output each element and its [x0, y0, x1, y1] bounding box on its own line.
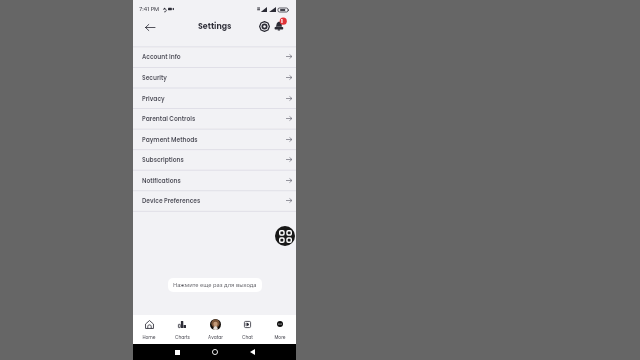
staticText: Privacy: [142, 95, 165, 103]
button[interactable]: Back: [246, 346, 258, 358]
button[interactable]: Parental Controls: [133, 108, 296, 129]
button[interactable]: Security: [133, 67, 296, 88]
staticText: Subscriptions: [142, 156, 184, 164]
button[interactable]: [166, 315, 199, 344]
staticText: Chat: [242, 334, 253, 340]
button[interactable]: Notifications: [133, 170, 296, 191]
button[interactable]: [263, 315, 296, 344]
staticText: Parental Controls: [142, 115, 196, 123]
staticText: Security: [142, 74, 167, 82]
button[interactable]: Settings: [258, 20, 270, 32]
button[interactable]: Home: [209, 346, 221, 358]
button[interactable]: Privacy: [133, 88, 296, 109]
button[interactable]: [198, 315, 231, 344]
button[interactable]: Back: [143, 20, 157, 34]
staticText: Avatar: [208, 334, 223, 340]
staticText: Payment Methods: [142, 136, 198, 144]
staticText: 7:41 PM: [139, 5, 160, 13]
staticText: Device Preferences: [142, 197, 201, 205]
staticText: Нажмите еще раз для выхода: [173, 281, 257, 289]
button[interactable]: Account Info: [133, 46, 296, 67]
staticText: Home: [142, 334, 156, 340]
staticText: Account Info: [142, 53, 181, 61]
button[interactable]: Device Preferences: [133, 190, 296, 211]
button[interactable]: Subscriptions: [133, 149, 296, 170]
button[interactable]: [231, 315, 264, 344]
staticText: Settings: [198, 21, 232, 32]
button[interactable]: Payment Methods: [133, 129, 296, 150]
button[interactable]: Notifications: [273, 20, 285, 32]
staticText: 1: [281, 18, 283, 24]
staticText: More: [274, 334, 286, 340]
button[interactable]: Recents: [171, 346, 183, 358]
button[interactable]: [133, 315, 166, 344]
button[interactable]: Apps: [275, 226, 295, 246]
staticText: Charts: [175, 334, 190, 340]
staticText: Notifications: [142, 177, 181, 185]
